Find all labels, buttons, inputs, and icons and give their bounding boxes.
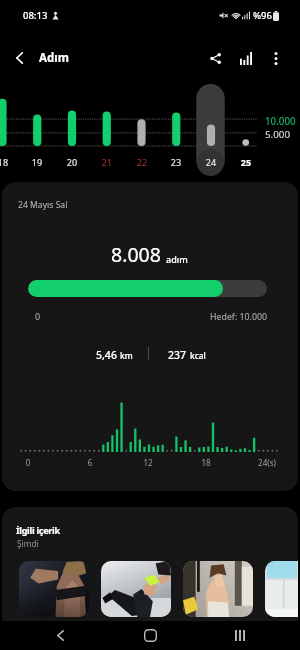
staticText: 22 — [132, 156, 152, 168]
button[interactable]: Related content — [183, 561, 253, 617]
staticText: 5,46 — [96, 348, 117, 362]
staticText: km — [120, 350, 133, 361]
staticText: 24 — [201, 156, 221, 168]
staticText: adım — [166, 253, 188, 265]
staticText: 6 — [86, 457, 94, 468]
staticText: 0 — [24, 457, 32, 468]
button[interactable]: Recent apps — [210, 621, 270, 650]
staticText: 8.008 — [111, 241, 161, 268]
staticText: 23 — [166, 156, 186, 168]
staticText: Hedef: 10.000 — [210, 311, 268, 323]
button[interactable]: Related content — [265, 561, 298, 617]
staticText: 10.000 — [265, 115, 296, 128]
staticText: 08:13 — [23, 9, 48, 22]
staticText: 5.000 — [265, 128, 291, 141]
staticText: Adım — [39, 50, 69, 66]
staticText: 18 — [0, 156, 13, 168]
button[interactable]: Back — [30, 621, 90, 650]
button[interactable]: Share — [200, 41, 230, 75]
button[interactable]: 24 Mayıs Sal — [2, 182, 298, 491]
button[interactable]: Related content — [101, 561, 171, 617]
staticText: Şimdi — [17, 538, 39, 549]
button[interactable]: Trends — [230, 41, 262, 75]
staticText: 24(s) — [254, 457, 280, 468]
staticText: 18 — [200, 457, 212, 468]
staticText: kcal — [190, 350, 206, 361]
staticText: %96 — [253, 9, 272, 22]
staticText: İlgili içerik — [16, 524, 60, 536]
staticText: 24 Mayıs Sal — [18, 199, 68, 211]
button[interactable]: More options — [262, 41, 290, 75]
button[interactable]: Related content — [19, 561, 89, 617]
button[interactable]: Back — [0, 40, 38, 76]
staticText: 21 — [97, 156, 117, 168]
staticText: 25 — [236, 156, 256, 168]
staticText: 20 — [62, 156, 82, 168]
staticText: 12 — [142, 457, 154, 468]
staticText: 237 — [168, 348, 187, 362]
button[interactable]: Home — [120, 621, 180, 650]
staticText: 0 — [35, 311, 41, 323]
staticText: 19 — [27, 156, 47, 168]
